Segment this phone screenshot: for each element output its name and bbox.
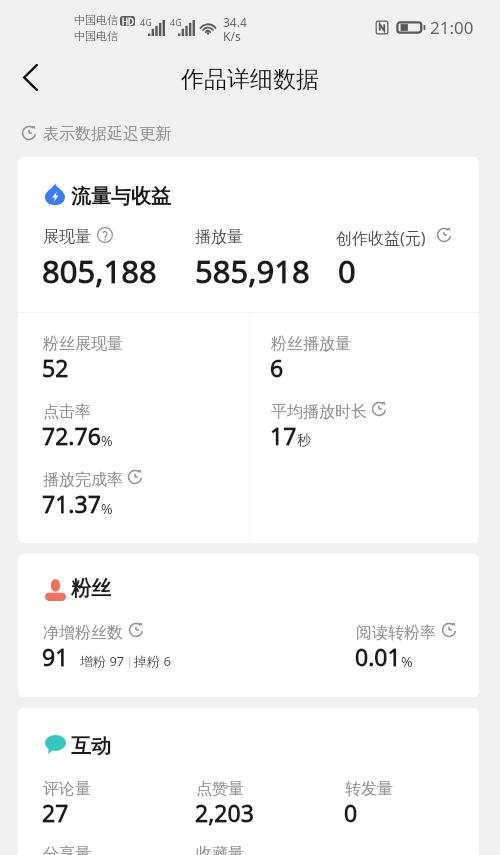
staticText: 评论量 (43, 779, 91, 799)
staticText: % (101, 499, 113, 518)
staticText: 点赞量 (196, 779, 244, 799)
staticText: 流量与收益 (71, 184, 171, 209)
staticText: 4G (140, 16, 152, 28)
staticText: 0 (344, 797, 358, 828)
staticText: 展现量 (43, 227, 91, 247)
staticText: 27 (42, 797, 69, 828)
staticText: 收藏量 (196, 844, 244, 855)
staticText: 中国电信 (74, 29, 118, 43)
staticText: 播放完成率 (43, 470, 123, 490)
staticText: 表示数据延迟更新 (43, 124, 171, 144)
staticText: 点击率 (43, 402, 91, 422)
staticText: % (401, 652, 413, 671)
staticText: 粉丝播放量 (271, 334, 351, 354)
staticText: 0 (338, 250, 356, 292)
staticText: 4G (170, 16, 182, 28)
staticText: 掉粉 6 (134, 652, 171, 670)
staticText: K/s (223, 28, 241, 44)
staticText: 71.37 (42, 488, 101, 519)
staticText: 秒 (297, 432, 311, 450)
staticText: 585,918 (195, 250, 310, 292)
staticText: % (101, 431, 113, 450)
staticText: 粉丝展现量 (43, 334, 123, 354)
staticText: 分享量 (43, 844, 91, 855)
staticText: 52 (42, 352, 69, 383)
staticText: 805,188 (42, 250, 157, 292)
staticText: 作品详细数据 (181, 65, 319, 94)
staticText: 平均播放时长 (271, 402, 367, 422)
staticText: 播放量 (195, 227, 243, 247)
staticText: 转发量 (345, 779, 393, 799)
staticText: 91 (42, 641, 69, 672)
staticText: 中国电信 (74, 13, 118, 27)
staticText: 增粉 97 (80, 652, 125, 670)
staticText: 互动 (71, 734, 111, 759)
staticText: 72.76 (42, 420, 101, 451)
staticText: 0.01 (355, 641, 401, 672)
staticText: 净增粉丝数 (43, 623, 123, 643)
staticText: 6 (270, 352, 284, 383)
staticText: 2,203 (195, 797, 254, 828)
button[interactable]: 返回 (8, 55, 52, 99)
staticText: 17 (270, 420, 297, 451)
staticText: HD (122, 16, 134, 26)
staticText: 34.4 (223, 14, 247, 30)
staticText: 创作收益(元) (336, 227, 426, 249)
staticText: 21:00 (430, 16, 474, 39)
staticText: 粉丝 (71, 576, 111, 601)
staticText: 阅读转粉率 (356, 623, 436, 643)
